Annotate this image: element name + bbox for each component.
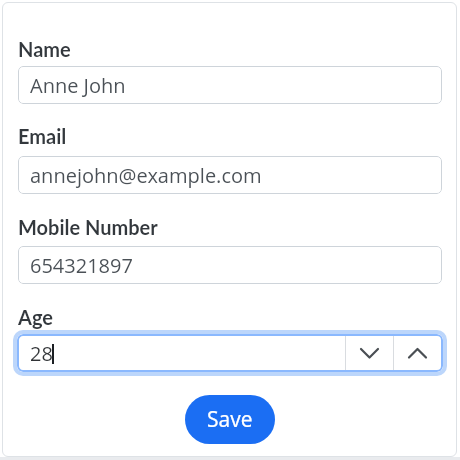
staticText: Age (18, 305, 53, 329)
button[interactable]: 28 (17, 334, 443, 372)
staticText: Mobile Number (18, 215, 158, 239)
button[interactable]: 654321897 (18, 246, 442, 284)
staticText: Save (207, 405, 253, 434)
button[interactable]: annejohn@example.com (18, 156, 442, 194)
button[interactable] (346, 336, 393, 370)
button[interactable]: Anne John (18, 66, 442, 104)
staticText: Email (18, 124, 67, 148)
staticText: annejohn@example.com (30, 162, 262, 189)
button[interactable]: Save (185, 395, 275, 444)
staticText: Anne John (30, 72, 126, 99)
staticText: 654321897 (30, 252, 133, 279)
staticText: Name (18, 37, 71, 61)
staticText: 28 (30, 340, 53, 367)
button[interactable] (394, 336, 441, 370)
